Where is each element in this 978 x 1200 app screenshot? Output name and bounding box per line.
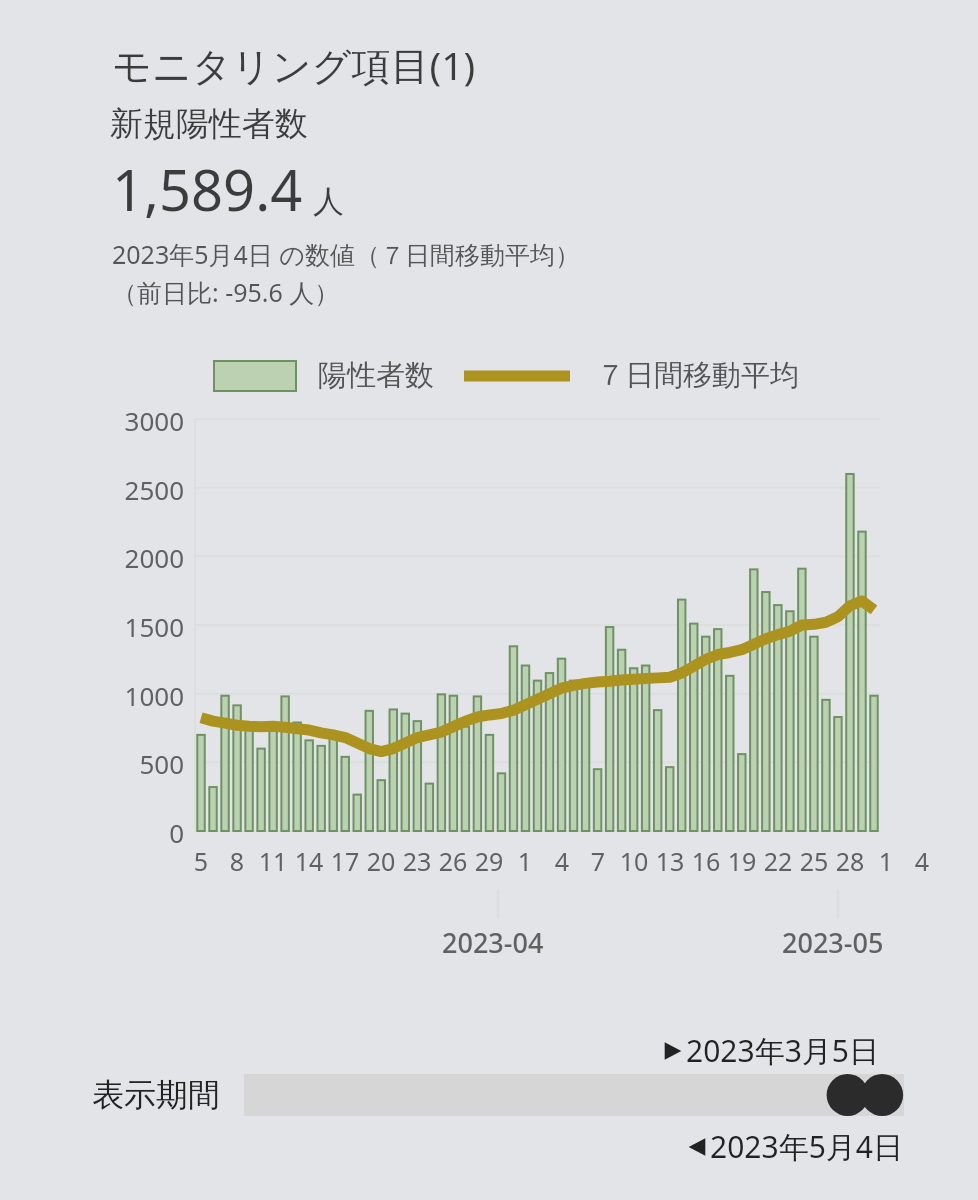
staticText: 2023年3月5日 [686,1030,879,1071]
staticText: 4 [892,844,952,878]
staticText: 2023年5月4日 [710,1126,903,1167]
button[interactable]: 表示期間スライダー [244,1074,904,1116]
button[interactable] [214,361,296,391]
staticText: 新規陽性者数 [110,103,308,145]
staticText: 2023-05 [782,924,884,961]
staticText: 1 [856,844,916,878]
staticText: 16 [676,844,736,878]
staticText: 26 [423,844,483,878]
staticText: 19 [712,844,772,878]
staticText: 13 [640,844,700,878]
staticText: 8 [207,844,267,878]
staticText: 5 [171,844,231,878]
staticText: 29 [459,844,519,878]
staticText: 28 [820,844,880,878]
staticText: 1 [495,844,555,878]
staticText: 22 [748,844,808,878]
staticText: 1500 [96,609,184,644]
staticText: 23 [387,844,447,878]
staticText: 3000 [96,403,184,438]
staticText: 7 [568,844,628,878]
staticText: 1,589.4 [112,151,303,227]
staticText: 1000 [96,678,184,713]
staticText: 2023-04 [442,924,544,961]
staticText: モニタリング項目(1) [112,38,476,91]
staticText: 2023年5月4日 の数値（７日間移動平均） [112,237,580,271]
staticText: ７日間移動平均 [596,357,799,394]
staticText: 500 [96,746,184,781]
staticText: 10 [604,844,664,878]
staticText: 17 [315,844,375,878]
staticText: 25 [784,844,844,878]
staticText: 2000 [96,540,184,575]
staticText: （前日比: -95.6 人） [112,275,340,309]
staticText: 表示期間 [92,1075,220,1115]
staticText: 4 [532,844,592,878]
staticText: 0 [96,815,184,850]
staticText: 人 [313,182,344,221]
staticText: 2500 [96,472,184,507]
staticText: 20 [351,844,411,878]
staticText: 陽性者数 [318,357,434,394]
staticText: 11 [243,844,303,878]
staticText: 14 [279,844,339,878]
